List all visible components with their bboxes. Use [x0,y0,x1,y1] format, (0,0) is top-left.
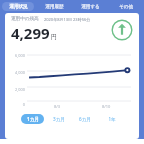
button[interactable]: 運用状況 [0,0,36,13]
staticText: 3カ月 [53,116,65,122]
button[interactable]: 3カ月 [45,113,71,124]
staticText: 運用する [81,4,100,10]
button[interactable]: 残高が増加しています [111,19,133,41]
button[interactable]: その他 [108,0,144,13]
staticText: 6,000 [11,53,25,58]
staticText: 0 [11,102,25,107]
staticText: 8/3 [54,104,61,109]
button[interactable]: 6カ月 [71,113,98,124]
staticText: 2,000 [11,87,25,92]
button[interactable]: 1年 [98,113,125,124]
staticText: その他 [119,4,133,10]
staticText: 4,000 [11,70,25,75]
button[interactable]: 1カ月 [19,113,45,124]
staticText: 運用中の残高 [11,16,39,22]
staticText: 2020年8月13日 23時56分 [44,17,91,22]
staticText: 1カ月 [27,116,39,122]
staticText: 4,299 [11,23,50,43]
button[interactable]: 運用履歴 [36,0,72,13]
button[interactable]: 運用する [72,0,108,13]
staticText: 1年 [108,116,116,122]
staticText: 6カ月 [79,116,91,122]
staticText: 8/10 [102,104,111,109]
staticText: 運用履歴 [45,4,64,10]
staticText: 運用状況 [9,4,28,10]
staticText: 円 [51,33,57,41]
